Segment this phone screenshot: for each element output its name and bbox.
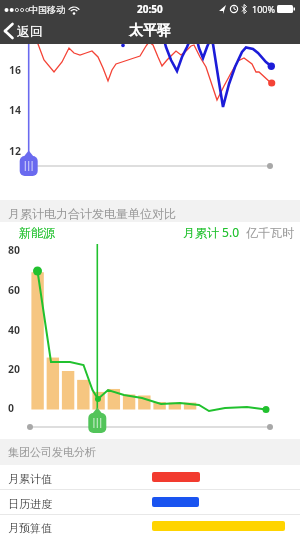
- staticText: 太平驿: [129, 22, 171, 40]
- staticText: 60: [8, 283, 21, 297]
- button[interactable]: 月预算值: [0, 515, 300, 536]
- staticText: 月预算值: [8, 521, 52, 535]
- button[interactable]: 月累计值: [0, 465, 300, 489]
- staticText: 0: [8, 401, 15, 415]
- button[interactable]: 16: [0, 44, 300, 200]
- staticText: 20: [8, 362, 21, 376]
- staticText: 新能源: [19, 225, 55, 240]
- staticText: 亿千瓦时: [240, 224, 295, 240]
- staticText: 日历进度: [8, 497, 52, 511]
- staticText: 16: [9, 63, 22, 77]
- staticText: 12: [9, 144, 22, 158]
- staticText: 月累计值: [8, 472, 52, 486]
- button[interactable]: 日历进度: [0, 490, 300, 514]
- button[interactable]: 返回: [0, 23, 43, 39]
- staticText: 月累计电力合计发电量单位对比: [8, 206, 176, 221]
- staticText: 中国移动: [29, 4, 65, 15]
- staticText: 40: [8, 323, 21, 337]
- staticText: 80: [8, 243, 21, 257]
- staticText: 月累计 5.0: [183, 224, 240, 240]
- staticText: 100%: [252, 3, 275, 15]
- staticText: 20:50: [137, 2, 163, 16]
- staticText: 返回: [17, 23, 43, 39]
- staticText: 14: [9, 103, 22, 117]
- button[interactable]: 80: [0, 242, 300, 439]
- staticText: 集团公司发电分析: [8, 445, 96, 459]
